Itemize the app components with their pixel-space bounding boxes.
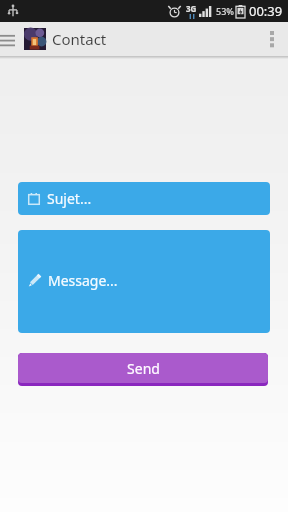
staticText: 00:39 xyxy=(249,2,283,20)
staticText: Contact xyxy=(52,29,107,49)
button[interactable]: Navigation drawer xyxy=(0,22,16,56)
staticText: Message... xyxy=(48,271,118,290)
button[interactable]: More options xyxy=(256,22,288,56)
staticText: Send xyxy=(127,359,160,378)
staticText: Sujet... xyxy=(47,189,92,208)
button[interactable]: Sujet... xyxy=(18,182,270,215)
button[interactable]: Message... xyxy=(18,230,270,333)
button[interactable]: Send xyxy=(18,353,268,386)
staticText: 3G xyxy=(186,3,197,14)
staticText: 53% xyxy=(216,5,234,17)
